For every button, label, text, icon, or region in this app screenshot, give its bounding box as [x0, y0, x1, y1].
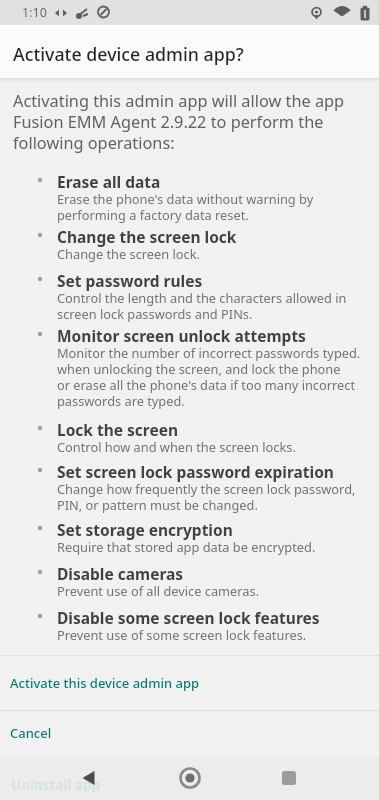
staticText: Prevent use of some screen lock features…: [57, 626, 307, 643]
button[interactable]: [76, 764, 104, 792]
staticText: Change the screen lock: [57, 226, 237, 247]
staticText: Monitor screen unlock attempts: [57, 325, 306, 346]
staticText: Activate device admin app?: [13, 42, 244, 66]
staticText: Require that stored app data be encrypte…: [57, 538, 316, 555]
staticText: passwords are typed.: [57, 392, 185, 409]
staticText: Disable cameras: [57, 563, 184, 584]
staticText: 1:10: [22, 4, 47, 21]
staticText: screen lock passwords and PINs.: [57, 305, 253, 322]
staticText: Prevent use of all device cameras.: [57, 582, 260, 599]
button[interactable]: [176, 764, 204, 792]
staticText: Erase the phone's data without warning b…: [57, 190, 314, 207]
staticText: Lock the screen: [57, 419, 179, 440]
staticText: Control the length and the characters al…: [57, 289, 347, 306]
staticText: Disable some screen lock features: [57, 607, 320, 628]
staticText: Change the screen lock.: [57, 245, 200, 262]
staticText: Activate this device admin app: [10, 674, 200, 692]
button[interactable]: [275, 764, 303, 792]
staticText: Change how frequently the screen lock pa…: [57, 480, 356, 497]
staticText: Cancel: [10, 724, 52, 742]
button[interactable]: Activate this device admin app: [0, 656, 379, 710]
staticText: Set storage encryption: [57, 519, 233, 540]
button[interactable]: Cancel: [0, 711, 379, 755]
staticText: Monitor the number of incorrect password…: [57, 344, 361, 361]
staticText: PIN, or pattern must be changed.: [57, 496, 258, 513]
staticText: Set screen lock password expiration: [57, 461, 334, 482]
staticText: or erase all the phone's data if too man…: [57, 376, 356, 393]
staticText: when unlocking the screen, and lock the …: [57, 360, 341, 377]
staticText: Fusion EMM Agent 2.9.22 to perform the: [13, 111, 324, 133]
staticText: Control how and when the screen locks.: [57, 438, 296, 455]
staticText: Activating this admin app will allow the…: [13, 90, 345, 112]
staticText: Uninstall app: [11, 776, 101, 794]
staticText: performing a factory data reset.: [57, 206, 249, 223]
staticText: following operations:: [13, 132, 175, 154]
staticText: Set password rules: [57, 270, 203, 291]
staticText: Erase all data: [57, 171, 161, 192]
